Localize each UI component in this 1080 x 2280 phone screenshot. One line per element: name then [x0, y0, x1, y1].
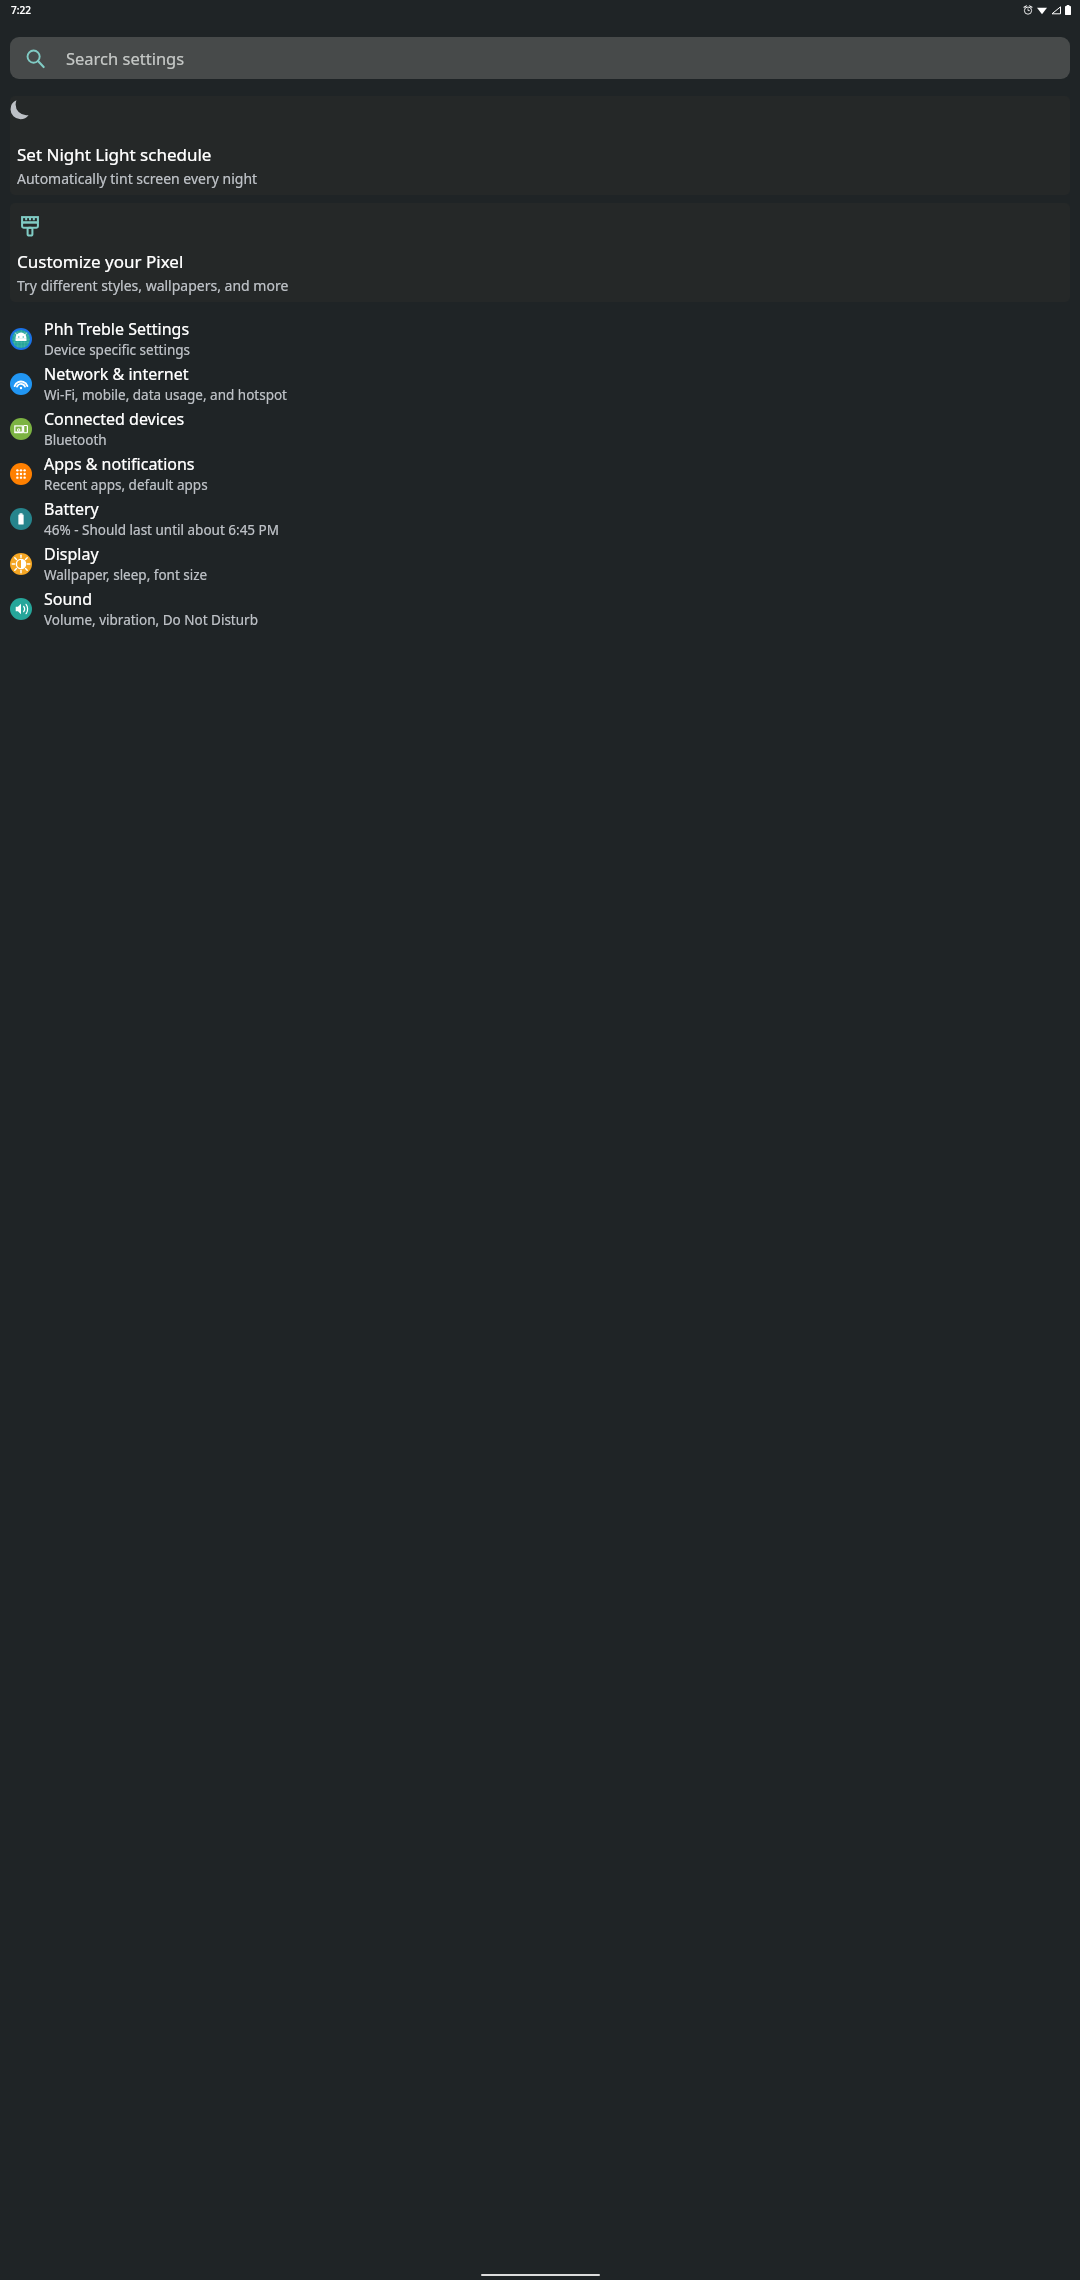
staticText: 7:22: [11, 3, 31, 17]
staticText: Customize your Pixel: [17, 250, 184, 273]
staticText: Battery: [44, 498, 99, 520]
button[interactable]: Apps & notifications: [0, 451, 1080, 496]
button[interactable]: Sound: [0, 586, 1080, 631]
staticText: Network & internet: [44, 363, 189, 385]
staticText: Search settings: [66, 47, 185, 69]
staticText: Connected devices: [44, 408, 185, 430]
staticText: 46% - Should last until about 6:45 PM: [44, 521, 280, 539]
staticText: Wallpaper, sleep, font size: [44, 566, 208, 584]
staticText: Display: [44, 543, 99, 565]
button[interactable]: Connected devices: [0, 406, 1080, 451]
staticText: Bluetooth: [44, 431, 107, 449]
staticText: Apps & notifications: [44, 453, 195, 475]
staticText: Set Night Light schedule: [17, 143, 212, 166]
button[interactable]: Customize your Pixel: [10, 203, 1070, 302]
button[interactable]: Phh Treble Settings: [0, 316, 1080, 361]
staticText: Volume, vibration, Do Not Disturb: [44, 611, 258, 629]
staticText: Sound: [44, 588, 93, 610]
staticText: Wi-Fi, mobile, data usage, and hotspot: [44, 386, 287, 404]
staticText: Recent apps, default apps: [44, 476, 208, 494]
button[interactable]: Display: [0, 541, 1080, 586]
button[interactable]: Network & internet: [0, 361, 1080, 406]
button[interactable]: Search settings: [10, 37, 1070, 79]
staticText: Device specific settings: [44, 341, 191, 359]
staticText: Automatically tint screen every night: [17, 169, 258, 188]
staticText: Try different styles, wallpapers, and mo…: [17, 276, 289, 295]
staticText: Phh Treble Settings: [44, 318, 190, 340]
button[interactable]: Battery: [0, 496, 1080, 541]
button[interactable]: Set Night Light schedule: [10, 96, 1070, 195]
